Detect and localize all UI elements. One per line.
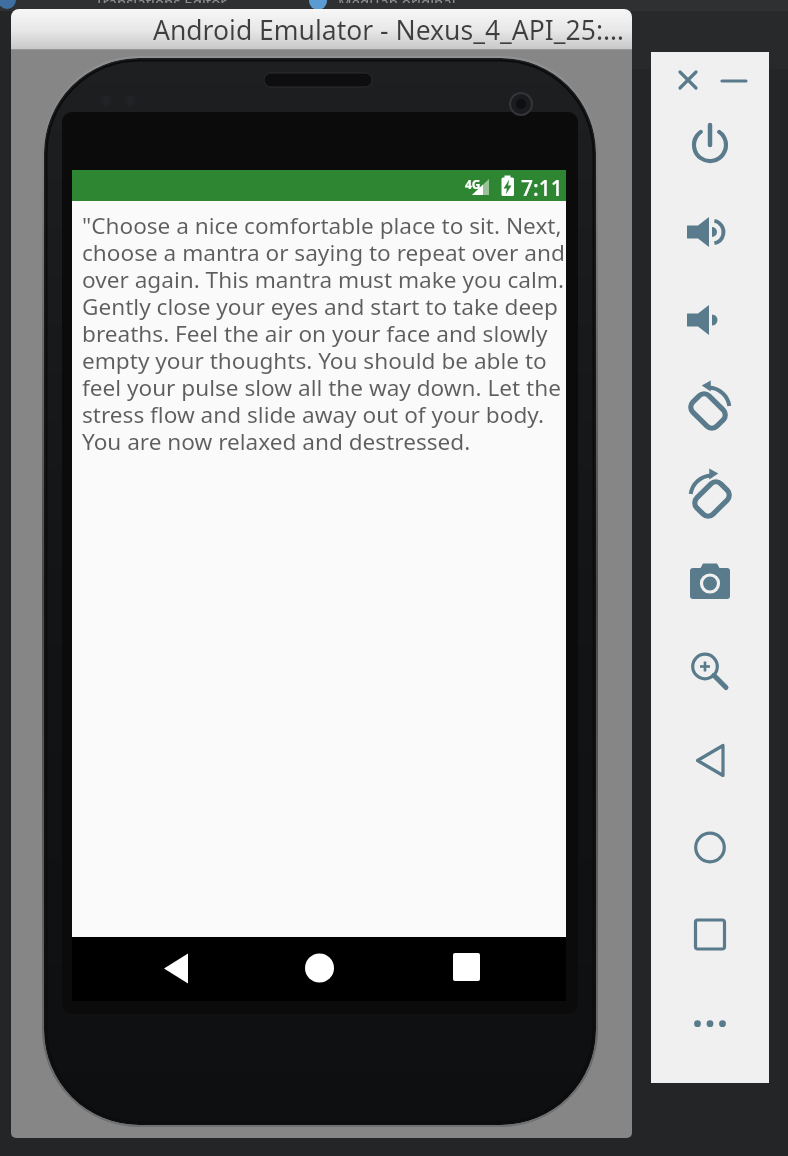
button[interactable] — [686, 823, 734, 871]
button[interactable] — [686, 121, 734, 169]
button[interactable] — [686, 384, 734, 432]
button[interactable] — [686, 296, 734, 344]
button[interactable] — [442, 945, 490, 993]
staticText: "Choose a nice comfortable place to sit.… — [82, 210, 565, 457]
button[interactable] — [686, 472, 734, 520]
staticText: Android Emulator - Nexus_4_API_25:… — [153, 12, 624, 48]
staticText: Translations Editor — [95, 0, 227, 3]
staticText: 7:11 — [521, 174, 563, 203]
button[interactable] — [152, 945, 200, 993]
button[interactable] — [686, 560, 734, 608]
button[interactable] — [722, 69, 746, 93]
button[interactable] — [676, 68, 700, 92]
button[interactable] — [686, 911, 734, 959]
staticText: MediTab original — [338, 0, 456, 3]
button[interactable] — [295, 945, 343, 993]
button[interactable] — [686, 643, 734, 691]
button[interactable] — [686, 1000, 734, 1048]
staticText: 4G — [465, 176, 481, 192]
button[interactable] — [686, 736, 734, 784]
button[interactable] — [686, 208, 734, 256]
